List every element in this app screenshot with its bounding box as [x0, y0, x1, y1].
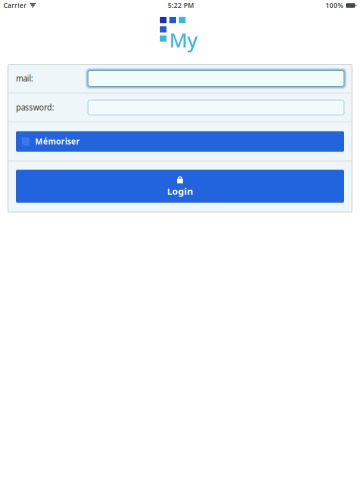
button[interactable]: Login — [16, 170, 344, 204]
button[interactable]: Mémoriser — [16, 131, 344, 152]
staticText: My — [169, 26, 198, 53]
staticText: 5:22 PM — [168, 1, 194, 10]
staticText: 100% — [325, 1, 343, 10]
staticText: Mémoriser — [35, 136, 80, 147]
staticText: Carrier — [3, 1, 26, 10]
staticText: mail: — [16, 73, 33, 84]
staticText: Login — [167, 185, 193, 197]
staticText: password: — [16, 102, 54, 113]
